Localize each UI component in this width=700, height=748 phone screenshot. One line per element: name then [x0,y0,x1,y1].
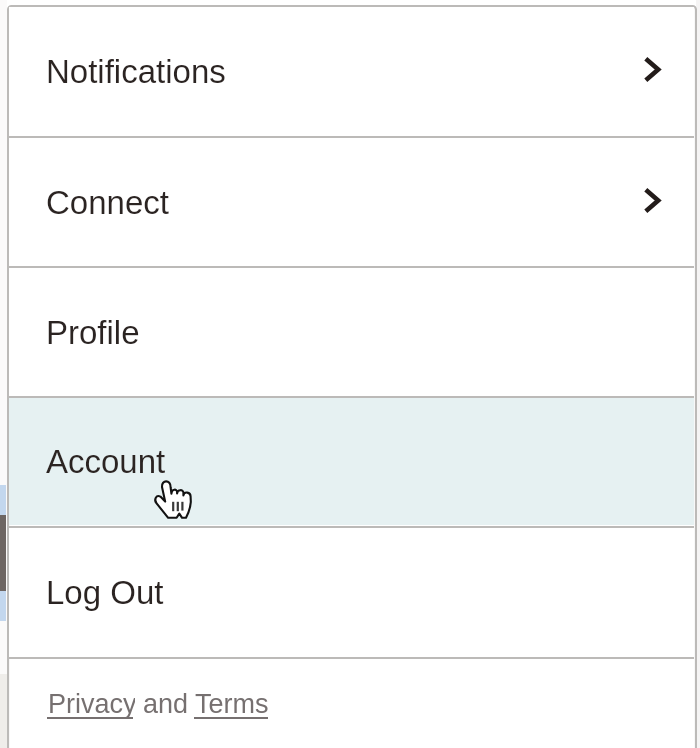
button[interactable]: Connect [9,138,694,266]
button[interactable]: Log Out [9,528,694,657]
other: Pointer [154,479,193,521]
staticText: and [143,689,189,719]
staticText: Privacy [48,689,135,719]
staticText: Connect [46,184,169,221]
button[interactable]: Notifications [9,7,694,136]
button[interactable]: Account [9,398,694,525]
button[interactable]: Profile [9,268,694,396]
button[interactable]: Privacy [47,690,134,720]
staticText: Account [46,443,166,480]
staticText: Terms [195,689,270,719]
staticText: Profile [46,314,140,351]
button[interactable]: Terms [194,690,269,720]
staticText: Notifications [46,53,226,90]
staticText: Log Out [46,574,164,611]
